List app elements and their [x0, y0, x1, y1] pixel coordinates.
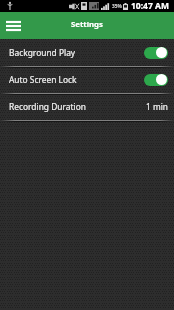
staticText: Settings: [71, 19, 103, 30]
staticText: 35%: [112, 3, 122, 10]
button[interactable]: Recording Duration: [0, 93, 174, 120]
button[interactable]: Auto Screen Lock: [0, 66, 174, 93]
button[interactable]: Toggle switch, on: [144, 46, 168, 59]
staticText: Recording Duration: [9, 101, 86, 112]
button[interactable]: Open navigation drawer: [4, 16, 23, 36]
button[interactable]: Background Play: [0, 39, 174, 66]
staticText: 1 min: [146, 101, 168, 112]
staticText: 10:47 AM: [131, 0, 169, 12]
button[interactable]: Toggle switch, on: [144, 73, 168, 86]
staticText: Auto Screen Lock: [9, 74, 77, 85]
staticText: Background Play: [9, 47, 76, 58]
